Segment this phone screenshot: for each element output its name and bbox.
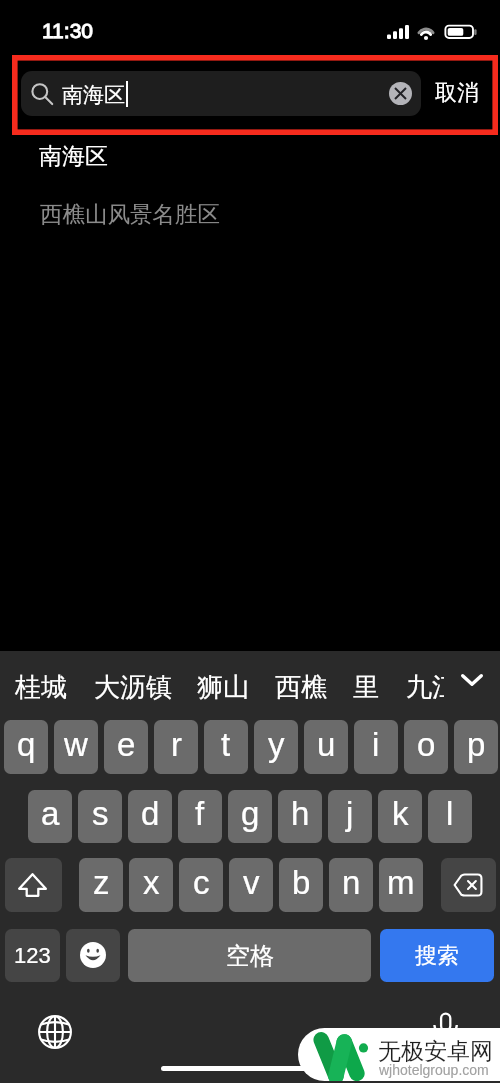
button[interactable]: v (229, 858, 273, 912)
staticText: 桂城 (15, 671, 67, 704)
staticText: x (143, 864, 160, 901)
staticText: q (17, 726, 36, 763)
staticText: 空格 (226, 941, 274, 971)
button[interactable]: 九江 (406, 668, 444, 702)
button[interactable]: k (378, 790, 422, 843)
button[interactable]: Clear text (389, 82, 412, 105)
button[interactable]: 空格 (128, 929, 371, 982)
button[interactable]: r (154, 720, 198, 774)
button[interactable]: Voice input (429, 1009, 462, 1042)
button[interactable]: d (128, 790, 172, 843)
button[interactable]: g (228, 790, 272, 843)
staticText: l (446, 795, 454, 832)
button[interactable]: a (28, 790, 72, 843)
button[interactable]: 狮山 (197, 668, 251, 702)
staticText: i (372, 726, 380, 763)
staticText: 西樵山风景名胜区 (40, 200, 220, 228)
button[interactable]: z (79, 858, 123, 912)
button[interactable]: 南海区 (21, 71, 421, 116)
button[interactable]: More candidates (455, 665, 489, 699)
staticText: 取消 (435, 79, 479, 107)
button[interactable]: n (329, 858, 373, 912)
button[interactable]: w (54, 720, 98, 774)
button[interactable]: e (104, 720, 148, 774)
staticText: 西樵 (275, 671, 327, 704)
staticText: y (268, 726, 285, 763)
button[interactable]: j (328, 790, 372, 843)
button[interactable]: Backspace (441, 858, 496, 912)
button[interactable]: 桂城 (15, 668, 69, 702)
button[interactable]: 取消 (430, 73, 484, 113)
staticText: h (291, 795, 310, 832)
staticText: k (392, 795, 409, 832)
button[interactable]: 南海区 (0, 138, 500, 186)
staticText: 狮山 (197, 671, 249, 704)
button[interactable]: q (4, 720, 48, 774)
button[interactable]: Switch keyboard (38, 1015, 72, 1049)
button[interactable]: x (129, 858, 173, 912)
staticText: s (92, 795, 109, 832)
staticText: p (467, 726, 486, 763)
button[interactable]: 西樵山风景名胜区 (0, 196, 500, 244)
staticText: 里 (353, 671, 379, 704)
staticText: u (317, 726, 336, 763)
staticText: m (387, 864, 415, 901)
button[interactable]: b (279, 858, 323, 912)
button[interactable]: 搜索 (380, 929, 494, 982)
button[interactable]: 大沥镇 (94, 668, 174, 702)
button[interactable]: 里 (353, 668, 381, 702)
staticText: g (241, 795, 260, 832)
staticText: wjhotelgroup.com (379, 1062, 489, 1078)
button[interactable]: u (304, 720, 348, 774)
staticText: z (93, 864, 110, 901)
staticText: 大沥镇 (94, 671, 172, 704)
button[interactable]: 西樵 (275, 668, 329, 702)
staticText: j (346, 795, 354, 832)
staticText: e (117, 726, 136, 763)
button[interactable]: y (254, 720, 298, 774)
staticText: a (41, 795, 60, 832)
staticText: d (141, 795, 160, 832)
button[interactable]: m (379, 858, 423, 912)
staticText: 搜索 (415, 942, 459, 970)
staticText: 南海区 (39, 142, 108, 171)
staticText: b (292, 864, 311, 901)
button[interactable]: t (204, 720, 248, 774)
staticText: t (221, 726, 231, 763)
staticText: f (195, 795, 205, 832)
staticText: 南海区 (62, 82, 125, 108)
staticText: 无极安卓网 (378, 1037, 493, 1066)
button[interactable]: Shift (5, 858, 62, 912)
staticText: w (64, 726, 88, 763)
button[interactable]: Emoji (66, 929, 120, 982)
staticText: 123 (14, 943, 51, 968)
staticText: o (417, 726, 436, 763)
button[interactable]: i (354, 720, 398, 774)
staticText: n (342, 864, 361, 901)
staticText: v (243, 864, 260, 901)
staticText: r (171, 726, 182, 763)
staticText: 九江 (406, 671, 444, 702)
button[interactable]: f (178, 790, 222, 843)
button[interactable]: o (404, 720, 448, 774)
button[interactable]: l (428, 790, 472, 843)
button[interactable]: 123 (5, 929, 60, 982)
button[interactable]: h (278, 790, 322, 843)
button[interactable]: s (78, 790, 122, 843)
button[interactable]: p (454, 720, 498, 774)
staticText: c (193, 864, 210, 901)
staticText: 11:30 (42, 19, 93, 42)
button[interactable]: c (179, 858, 223, 912)
